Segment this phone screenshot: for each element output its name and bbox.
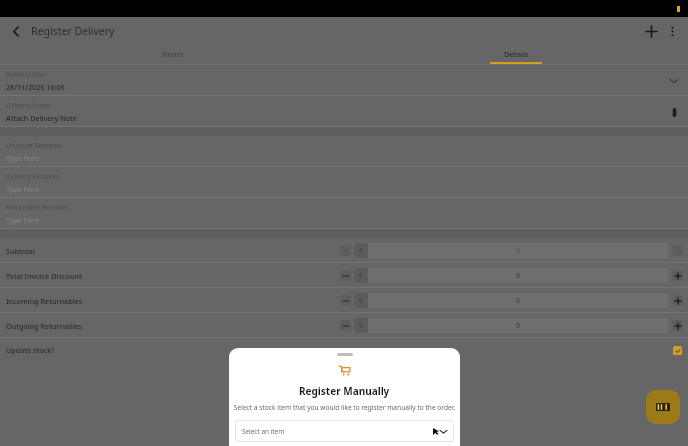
button[interactable]: More options bbox=[662, 21, 682, 41]
staticText: Select an item bbox=[242, 427, 285, 436]
button[interactable]: Decrease Incoming Returnables bbox=[340, 295, 351, 306]
staticText: Delivery Date bbox=[6, 70, 47, 79]
staticText: € bbox=[359, 271, 363, 280]
staticText: Outgoing Returnables bbox=[6, 321, 83, 331]
staticText: Update stock? bbox=[6, 345, 55, 355]
staticText: 0 bbox=[516, 246, 521, 256]
button[interactable]: Update stock? bbox=[0, 338, 688, 362]
staticText: Type here bbox=[6, 215, 40, 225]
staticText: Total Invoice Discount bbox=[6, 271, 82, 281]
staticText: Items bbox=[162, 49, 183, 59]
button[interactable]: Scan barcode bbox=[646, 390, 680, 424]
staticText: Register Manually bbox=[299, 384, 390, 398]
staticText: Type here bbox=[6, 184, 40, 194]
staticText: 0 bbox=[516, 296, 521, 306]
staticText: Subtotal bbox=[6, 246, 35, 256]
button[interactable]: Delivery Date bbox=[0, 65, 688, 96]
button[interactable]: Back bbox=[6, 21, 26, 41]
button[interactable]: Add bbox=[640, 20, 662, 42]
staticText: Select a stock item that you would like … bbox=[233, 403, 456, 412]
staticText: € bbox=[359, 296, 363, 305]
button[interactable]: Attach file bbox=[667, 105, 681, 119]
staticText: € bbox=[359, 246, 363, 255]
staticText: 0 bbox=[516, 271, 521, 281]
staticText: € bbox=[359, 321, 363, 330]
staticText: Incoming Returnables bbox=[6, 296, 83, 306]
button[interactable]: Select an item bbox=[235, 420, 454, 442]
staticText: 0 bbox=[516, 321, 521, 331]
button[interactable]: Drag handle bbox=[337, 353, 353, 356]
button[interactable]: Details bbox=[344, 44, 688, 64]
staticText: Delivery Notes bbox=[6, 101, 51, 110]
staticText: Details bbox=[504, 49, 529, 59]
staticText: Discount Remarks bbox=[6, 141, 62, 150]
staticText: 28/11/2025 16:05 bbox=[6, 82, 65, 92]
button[interactable]: Decrease Total Invoice Discount bbox=[340, 270, 351, 281]
staticText: Delivery Remarks bbox=[6, 172, 60, 181]
staticText: Type here bbox=[6, 153, 40, 163]
button[interactable]: Increase Total Invoice Discount bbox=[672, 270, 683, 281]
button[interactable]: Decrease Outgoing Returnables bbox=[340, 320, 351, 331]
button[interactable]: Increase Outgoing Returnables bbox=[672, 320, 683, 331]
button[interactable]: Expand bbox=[667, 74, 681, 88]
staticText: Register Delivery bbox=[31, 24, 115, 38]
button[interactable]: Increase Incoming Returnables bbox=[672, 295, 683, 306]
button[interactable]: Delivery Notes bbox=[0, 96, 688, 127]
staticText: Returnable Remarks bbox=[6, 203, 69, 212]
staticText: Attach Delivery Note bbox=[6, 113, 77, 123]
